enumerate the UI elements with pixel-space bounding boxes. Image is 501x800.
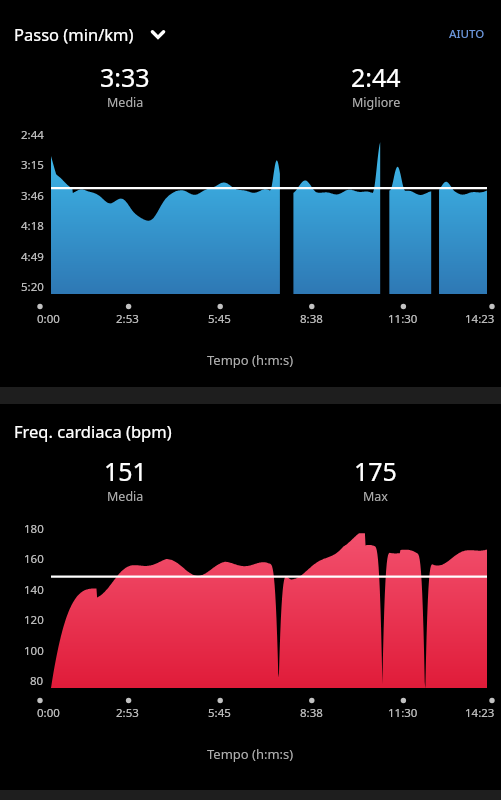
staticText: 140 [24,582,44,598]
button[interactable]: Passo (min/km) [14,23,168,45]
staticText: 3:33 [100,60,150,94]
staticText: 8:38 [300,311,323,327]
staticText: 0:00 [37,311,60,327]
staticText: 11:30 [388,705,418,721]
button[interactable]: AIUTO [443,20,491,48]
staticText: 2:44 [351,60,401,94]
button[interactable]: Freq. cardiaca (bpm) [14,420,172,442]
staticText: Tempo (h:m:s) [207,745,294,763]
staticText: 8:38 [300,705,323,721]
staticText: 120 [24,612,44,628]
staticText: 2:53 [116,311,139,327]
staticText: Freq. cardiaca (bpm) [14,420,172,442]
staticText: 14:23 [465,705,495,721]
staticText: 4:49 [21,249,44,265]
staticText: 0:00 [37,705,60,721]
staticText: 2:44 [21,127,44,143]
staticText: 14:23 [465,311,495,327]
staticText: 100 [24,643,44,659]
staticText: 3:15 [21,157,44,173]
staticText: 5:45 [208,311,231,327]
staticText: Media [107,488,144,505]
staticText: 4:18 [21,218,44,234]
staticText: Max [363,488,388,505]
staticText: Tempo (h:m:s) [207,351,294,369]
staticText: 80 [30,673,44,689]
staticText: Media [107,94,144,111]
staticText: 3:46 [21,188,44,204]
staticText: 151 [104,454,147,488]
staticText: Passo (min/km) [14,23,134,45]
staticText: 2:53 [116,705,139,721]
staticText: 11:30 [388,311,418,327]
staticText: AIUTO [449,26,485,42]
other: Cambia metrica [148,24,168,44]
staticText: Migliore [352,94,401,111]
staticText: 5:45 [208,705,231,721]
staticText: 160 [24,551,44,567]
staticText: 175 [354,454,397,488]
staticText: 180 [24,521,44,537]
staticText: 5:20 [21,279,44,295]
